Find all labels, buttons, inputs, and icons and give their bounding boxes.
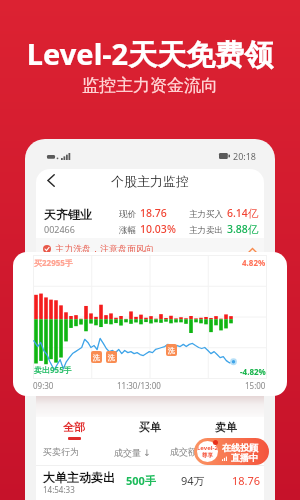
button[interactable]: 全部 [36,415,112,445]
staticText: 监控主力资金流向 [0,75,300,96]
staticText: 14:54:33 [43,484,75,495]
staticText: 买22955手 [34,257,73,268]
staticText: 洗 [108,353,115,362]
staticText: 3.88亿 [227,222,259,236]
staticText: 20:18 [233,150,257,162]
staticText: 94万 [181,473,205,488]
staticText: 价格 [233,446,251,457]
staticText: 尊享 [202,452,213,459]
staticText: 18.76 [140,206,167,220]
button[interactable]: 买单 [112,415,188,445]
staticText: 在线投顾 [222,442,258,453]
staticText: 全部 [63,420,85,434]
button[interactable]: 卖单 [188,415,264,445]
staticText: 买卖行为 [43,446,79,457]
staticText: -4.82% [240,366,266,377]
staticText: 个股主力监控 [36,173,264,189]
staticText: 天齐锂业 [44,207,92,222]
staticText: 11:30/13:00 [117,380,161,391]
staticText: 18.76 [232,473,261,488]
staticText: 买单 [139,420,161,434]
button[interactable]: Back [39,169,63,192]
staticText: 现价 [119,209,136,220]
staticText: 成交额 [170,446,197,457]
staticText: 洗 [93,353,100,362]
staticText: 500手 [126,473,156,488]
staticText: 10.03% [140,222,176,236]
staticText: 卖出955手 [34,364,72,375]
staticText: 6.14亿 [227,206,259,220]
staticText: 成交量 ↓ [114,446,151,458]
button[interactable]: 大单主动卖出 [36,466,264,500]
staticText: Level-2 [197,444,218,452]
staticText: 大单主动卖出 [43,470,115,485]
staticText: 卖单 [215,420,237,434]
button[interactable]: 主力洗盘，注意盘面风向 [36,238,264,266]
button[interactable]: Level-2 [194,438,269,465]
staticText: 洗 [168,346,175,355]
staticText: 4.82% [242,257,266,268]
staticText: 15:00 [245,380,266,391]
staticText: 主力洗盘，注意盘面风向 [55,243,154,254]
staticText: 主力买入 [189,209,223,220]
staticText: 直播中 [231,452,258,463]
staticText: 涨幅 [119,225,136,236]
staticText: Level-2天天免费领 [0,34,300,74]
staticText: 002466 [44,223,75,235]
staticText: 主力卖出 [189,225,223,236]
staticText: 09:30 [33,380,54,391]
